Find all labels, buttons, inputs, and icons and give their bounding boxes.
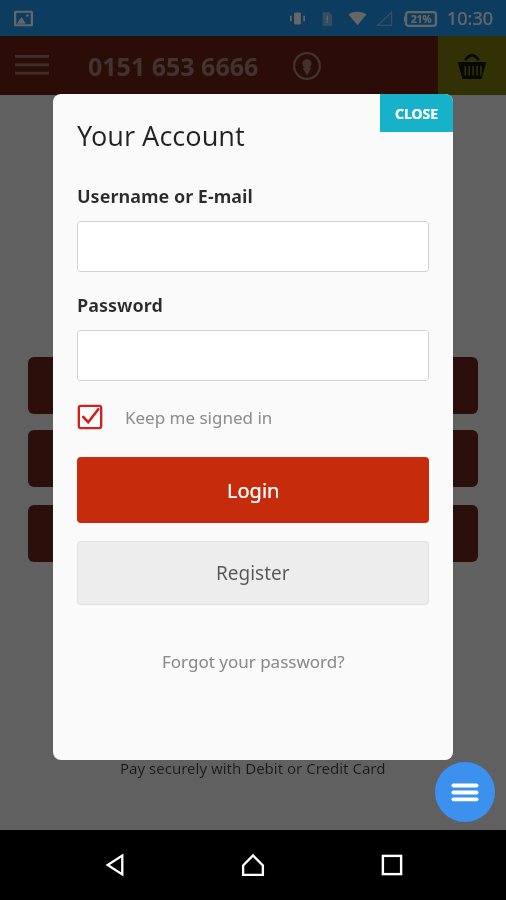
button[interactable]: Login [77,457,429,523]
button[interactable]: Recent apps [368,841,416,889]
button[interactable]: CLOSE [380,94,453,132]
button[interactable] [28,357,478,414]
button[interactable] [28,430,478,487]
staticText: 0151 653 6666 [88,49,259,83]
staticText: 10:30 [447,6,494,31]
button[interactable]: Back [91,841,139,889]
staticText: Username or E-mail [77,184,253,209]
button[interactable]: Home [229,841,277,889]
button[interactable]: Shopping basket [438,36,506,95]
staticText: Forgot your password? [162,650,345,673]
staticText: Login [227,477,280,504]
button[interactable] [77,330,429,381]
button[interactable]: Menu [8,42,56,90]
staticText: 21% [411,12,432,26]
button[interactable] [28,505,478,562]
button[interactable]: Location [285,44,329,88]
staticText: Keep me signed in [125,406,273,429]
staticText: Pay securely with Debit or Credit Card [120,758,386,778]
staticText: Password [77,293,163,318]
button[interactable]: Menu [435,762,495,822]
staticText: Register [216,560,290,586]
button[interactable] [77,221,429,272]
button[interactable]: Register [77,541,429,605]
staticText: Your Account [77,117,245,154]
button[interactable]: Forgot your password? [53,643,453,679]
button[interactable]: Keep me signed in [77,399,273,435]
staticText: CLOSE [395,104,439,123]
